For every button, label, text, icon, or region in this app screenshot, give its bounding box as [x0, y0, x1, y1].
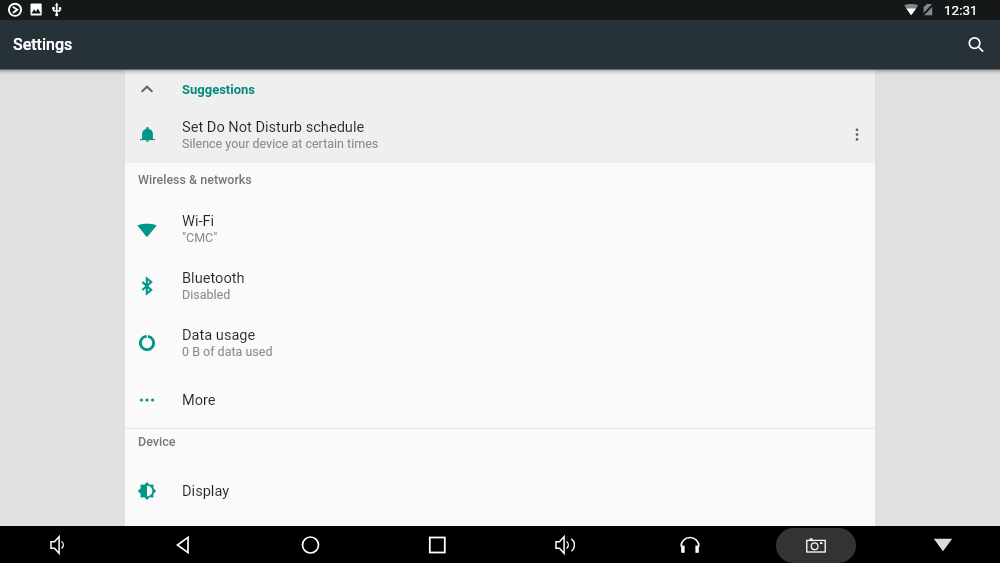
staticText: Bluetooth: [182, 269, 245, 286]
staticText: Wi-Fi: [182, 212, 215, 229]
staticText: Suggestions: [182, 82, 256, 97]
staticText: 0 B of data used: [182, 344, 273, 359]
button[interactable]: Suggestions: [125, 69, 875, 109]
staticText: Disabled: [182, 287, 231, 302]
staticText: Device: [138, 434, 176, 449]
staticText: "CMC": [182, 230, 218, 245]
staticText: Settings: [13, 35, 73, 54]
button[interactable]: Wi-Fi: [125, 200, 875, 257]
button[interactable]: Data usage: [125, 314, 875, 371]
button[interactable]: Search: [952, 21, 1000, 69]
staticText: Data usage: [182, 326, 256, 343]
button[interactable]: Set Do Not Disturb schedule: [125, 109, 875, 163]
button[interactable]: More options: [839, 109, 875, 163]
staticText: Silence your device at certain times: [182, 136, 379, 151]
staticText: More: [182, 391, 216, 408]
button[interactable]: Bluetooth: [125, 257, 875, 314]
staticText: Set Do Not Disturb schedule: [182, 118, 365, 135]
staticText: Display: [182, 482, 230, 499]
staticText: 12:31: [944, 2, 978, 18]
button[interactable]: Display: [125, 462, 875, 519]
staticText: Wireless & networks: [138, 172, 252, 187]
button[interactable]: Camera: [776, 528, 856, 563]
button[interactable]: More: [125, 371, 875, 428]
